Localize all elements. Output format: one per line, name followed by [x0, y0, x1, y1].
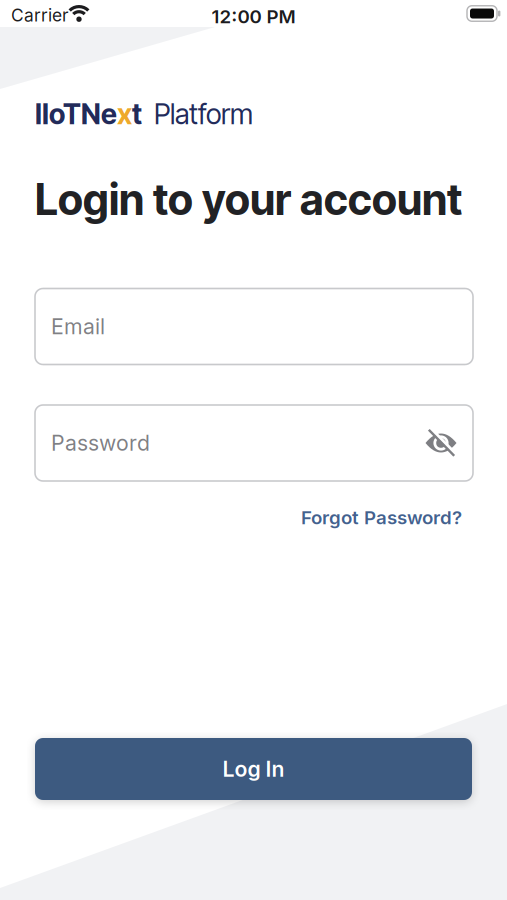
- button[interactable]: Email: [35, 288, 473, 364]
- staticText: x: [117, 97, 132, 130]
- staticText: 12:00 PM: [211, 5, 295, 27]
- staticText: Platform: [154, 97, 253, 130]
- button[interactable]: Forgot Password?: [301, 506, 462, 528]
- button[interactable]: Password: [35, 405, 473, 481]
- staticText: Password: [51, 430, 150, 456]
- staticText: IIoTNe: [35, 97, 117, 130]
- staticText: Forgot Password?: [301, 506, 462, 528]
- staticText: Carrier: [11, 5, 69, 25]
- staticText: t: [132, 97, 142, 130]
- button[interactable]: Log In: [35, 738, 472, 800]
- staticText: Email: [51, 314, 105, 339]
- button[interactable]: Show password: [424, 426, 458, 460]
- staticText: Login to your account: [35, 174, 462, 225]
- staticText: Log In: [222, 756, 284, 782]
